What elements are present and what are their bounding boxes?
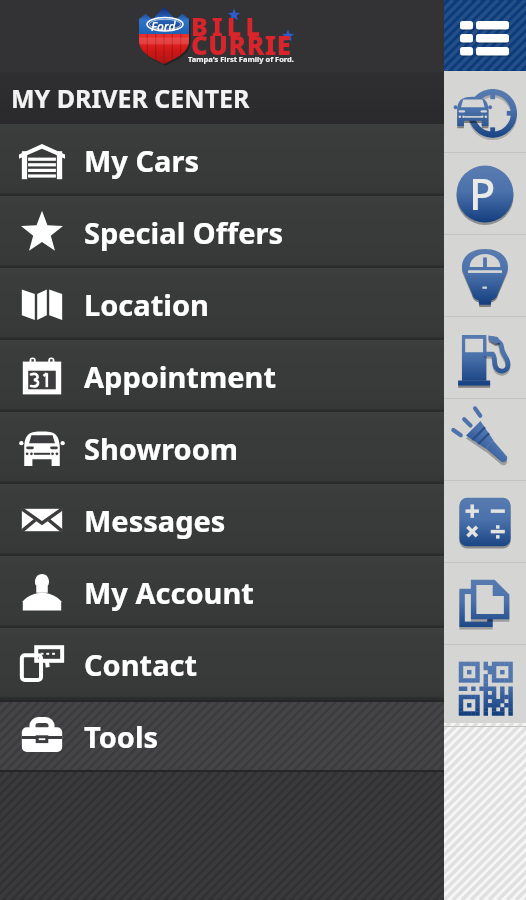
- button[interactable]: My Cars: [0, 124, 444, 196]
- staticText: Contact: [84, 645, 198, 684]
- button[interactable]: QR scanner: [444, 645, 526, 727]
- button[interactable]: Calculator: [444, 481, 526, 563]
- button[interactable]: Tools: [0, 700, 444, 772]
- staticText: Special Offers: [84, 213, 283, 252]
- staticText: Showroom: [84, 429, 239, 468]
- button[interactable]: Messages: [0, 484, 444, 556]
- staticText: Location: [84, 285, 209, 324]
- button[interactable]: Fuel: [444, 317, 526, 399]
- staticText: Appointment: [84, 357, 276, 396]
- button[interactable]: Car reminder: [444, 71, 526, 153]
- staticText: Ford: [151, 18, 176, 34]
- button[interactable]: Menu: [444, 0, 526, 71]
- staticText: BILL: [191, 9, 264, 43]
- staticText: Tools: [84, 717, 159, 756]
- staticText: My Account: [84, 573, 254, 612]
- button[interactable]: Parking: [444, 153, 526, 235]
- button[interactable]: Parking meter: [444, 235, 526, 317]
- button[interactable]: Appointment: [0, 340, 444, 412]
- button[interactable]: My Account: [0, 556, 444, 628]
- button[interactable]: Special Offers: [0, 196, 444, 268]
- staticText: MY DRIVER CENTER: [11, 81, 250, 115]
- staticText: CURRIE: [191, 27, 292, 62]
- staticText: My Cars: [84, 141, 199, 180]
- button[interactable]: Showroom: [0, 412, 444, 484]
- button[interactable]: Contact: [0, 628, 444, 700]
- staticText: Messages: [84, 501, 226, 540]
- button[interactable]: Location: [0, 268, 444, 340]
- staticText: P: [469, 164, 496, 223]
- staticText: Tampa's First Family of Ford.: [188, 54, 294, 64]
- button[interactable]: Notes: [444, 563, 526, 645]
- button[interactable]: Flashlight: [444, 399, 526, 481]
